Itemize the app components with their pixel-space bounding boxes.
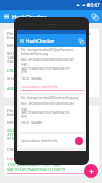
staticText: 9AC9153F79A0E09AC9 <box>7 59 52 65</box>
staticText: 153F79A0E09AC9153F79A0 <box>7 162 61 168</box>
button[interactable]: Add hash <box>84 164 98 178</box>
staticText: Extracted/Hashes.png <box>7 35 51 41</box>
button[interactable]: Menu <box>2 12 11 21</box>
staticText: CRC32 : 9A5AB8B <box>7 68 41 74</box>
staticText: File : /storage/emulated/0/OpenDocument <box>7 31 91 37</box>
staticText: CRC32 : 9A5AB8B <box>7 147 41 153</box>
staticText: MD5 : 8FC8A9E0E9D0B1F8D7A90B1F8D7A9 <box>21 102 74 106</box>
staticText: 3A8C71E9A0E09AC9153F79A0E09AC915 <box>21 67 70 71</box>
button[interactable]: Copy <box>90 12 100 22</box>
staticText: 10:47 <box>88 2 100 8</box>
staticText: SHA1 : <box>21 108 29 112</box>
staticText: A0E09AC9153F79A0E09AC9153F79 <box>7 86 75 92</box>
staticText: SHA1 : <box>7 51 20 57</box>
staticText: File : /storage/emulated/0/OpenDocument <box>21 48 73 52</box>
staticText: 9AC9153F79A0E09AC9153F79 <box>7 167 66 173</box>
staticText: SHA1 : 3A8C71E9A0E09AC915 <box>7 128 66 134</box>
staticText: 3A8C71E9A0E09AC9153F79A0E0 <box>7 55 71 61</box>
staticText: 3F79A0E09AC9153F79A0E09AC <box>7 132 68 138</box>
staticText: 9153F79A0E0 <box>7 136 34 142</box>
staticText: 3F79 <box>21 70 27 74</box>
staticText: 3F79 <box>21 115 27 119</box>
staticText: MD5 : 8FC8A9E0E9D0B1F8D7A90B <box>7 43 75 49</box>
staticText: Input a value to check this file <box>7 156 66 162</box>
staticText: MD5 : 8FC8A9E0E9D0B1F8D7A90B <box>7 120 75 126</box>
staticText: Input a value to check this file <box>21 85 58 89</box>
staticText: File : /storage/emulated/0/Download <box>7 108 80 114</box>
staticText: HashChecker <box>12 13 47 20</box>
button[interactable]: Check hash <box>75 137 83 145</box>
staticText: CRC32 : 9A5AB8B <box>21 121 43 125</box>
staticText: HashChecker <box>26 38 55 44</box>
staticText: Extracted/Hashes.png <box>21 52 48 56</box>
staticText: SHA256 : <box>7 76 25 82</box>
staticText: Input a value to check this file <box>21 139 58 143</box>
staticText: 3A8C71E9A0E09AC9153F79A0E09AC915 <box>21 111 70 115</box>
staticText: File : /storage/emulated/0/Download/Logo… <box>21 96 79 100</box>
staticText: MD5 : 8FC8A9E0E9D0B1F8D7A90B1F8D7A9 <box>21 58 74 62</box>
staticText: Extracted/Logo.png <box>7 112 46 118</box>
staticText: SHA1 : <box>21 63 29 67</box>
button[interactable]: Copy <box>77 37 85 45</box>
staticText: CRC32 : 9A5AB8B <box>21 77 43 81</box>
button[interactable]: Menu <box>18 37 25 44</box>
